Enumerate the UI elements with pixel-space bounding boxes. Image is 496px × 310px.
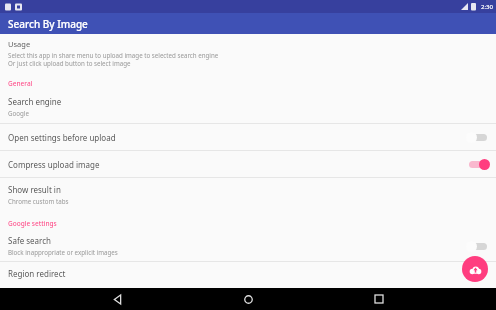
staticText: Block inappropriate or explicit images <box>8 248 118 256</box>
staticText: 2:30 <box>481 3 493 11</box>
button[interactable]: Region redirect <box>0 262 496 288</box>
staticText: Chrome custom tabs <box>8 197 69 205</box>
staticText: Google <box>8 109 29 117</box>
staticText: Safe search <box>8 235 51 246</box>
staticText: Compress upload image <box>8 159 100 170</box>
staticText: Open settings before upload <box>8 132 116 143</box>
staticText: Google settings <box>8 219 57 228</box>
button[interactable]: Upload image <box>462 256 488 282</box>
button[interactable]: Open settings before upload <box>0 124 496 150</box>
button[interactable]: Back <box>103 288 131 310</box>
staticText: Usage <box>8 39 31 49</box>
staticText: General <box>8 79 33 88</box>
staticText: Show result in <box>8 184 61 195</box>
button[interactable]: Show result in <box>0 178 496 211</box>
button[interactable]: Compress upload image <box>0 151 496 177</box>
staticText: Region redirect <box>8 268 66 279</box>
staticText: Search By Image <box>8 17 88 31</box>
button[interactable]: Usage <box>0 34 496 72</box>
staticText: Search engine <box>8 96 62 107</box>
button[interactable]: Safe search <box>0 230 496 261</box>
staticText: Select this app in share menu to upload … <box>8 51 219 59</box>
button[interactable]: Search engine <box>0 90 496 123</box>
button[interactable]: Recent apps <box>365 288 393 310</box>
button[interactable]: Home <box>234 288 262 310</box>
staticText: Or just click upload button to select im… <box>8 59 131 67</box>
